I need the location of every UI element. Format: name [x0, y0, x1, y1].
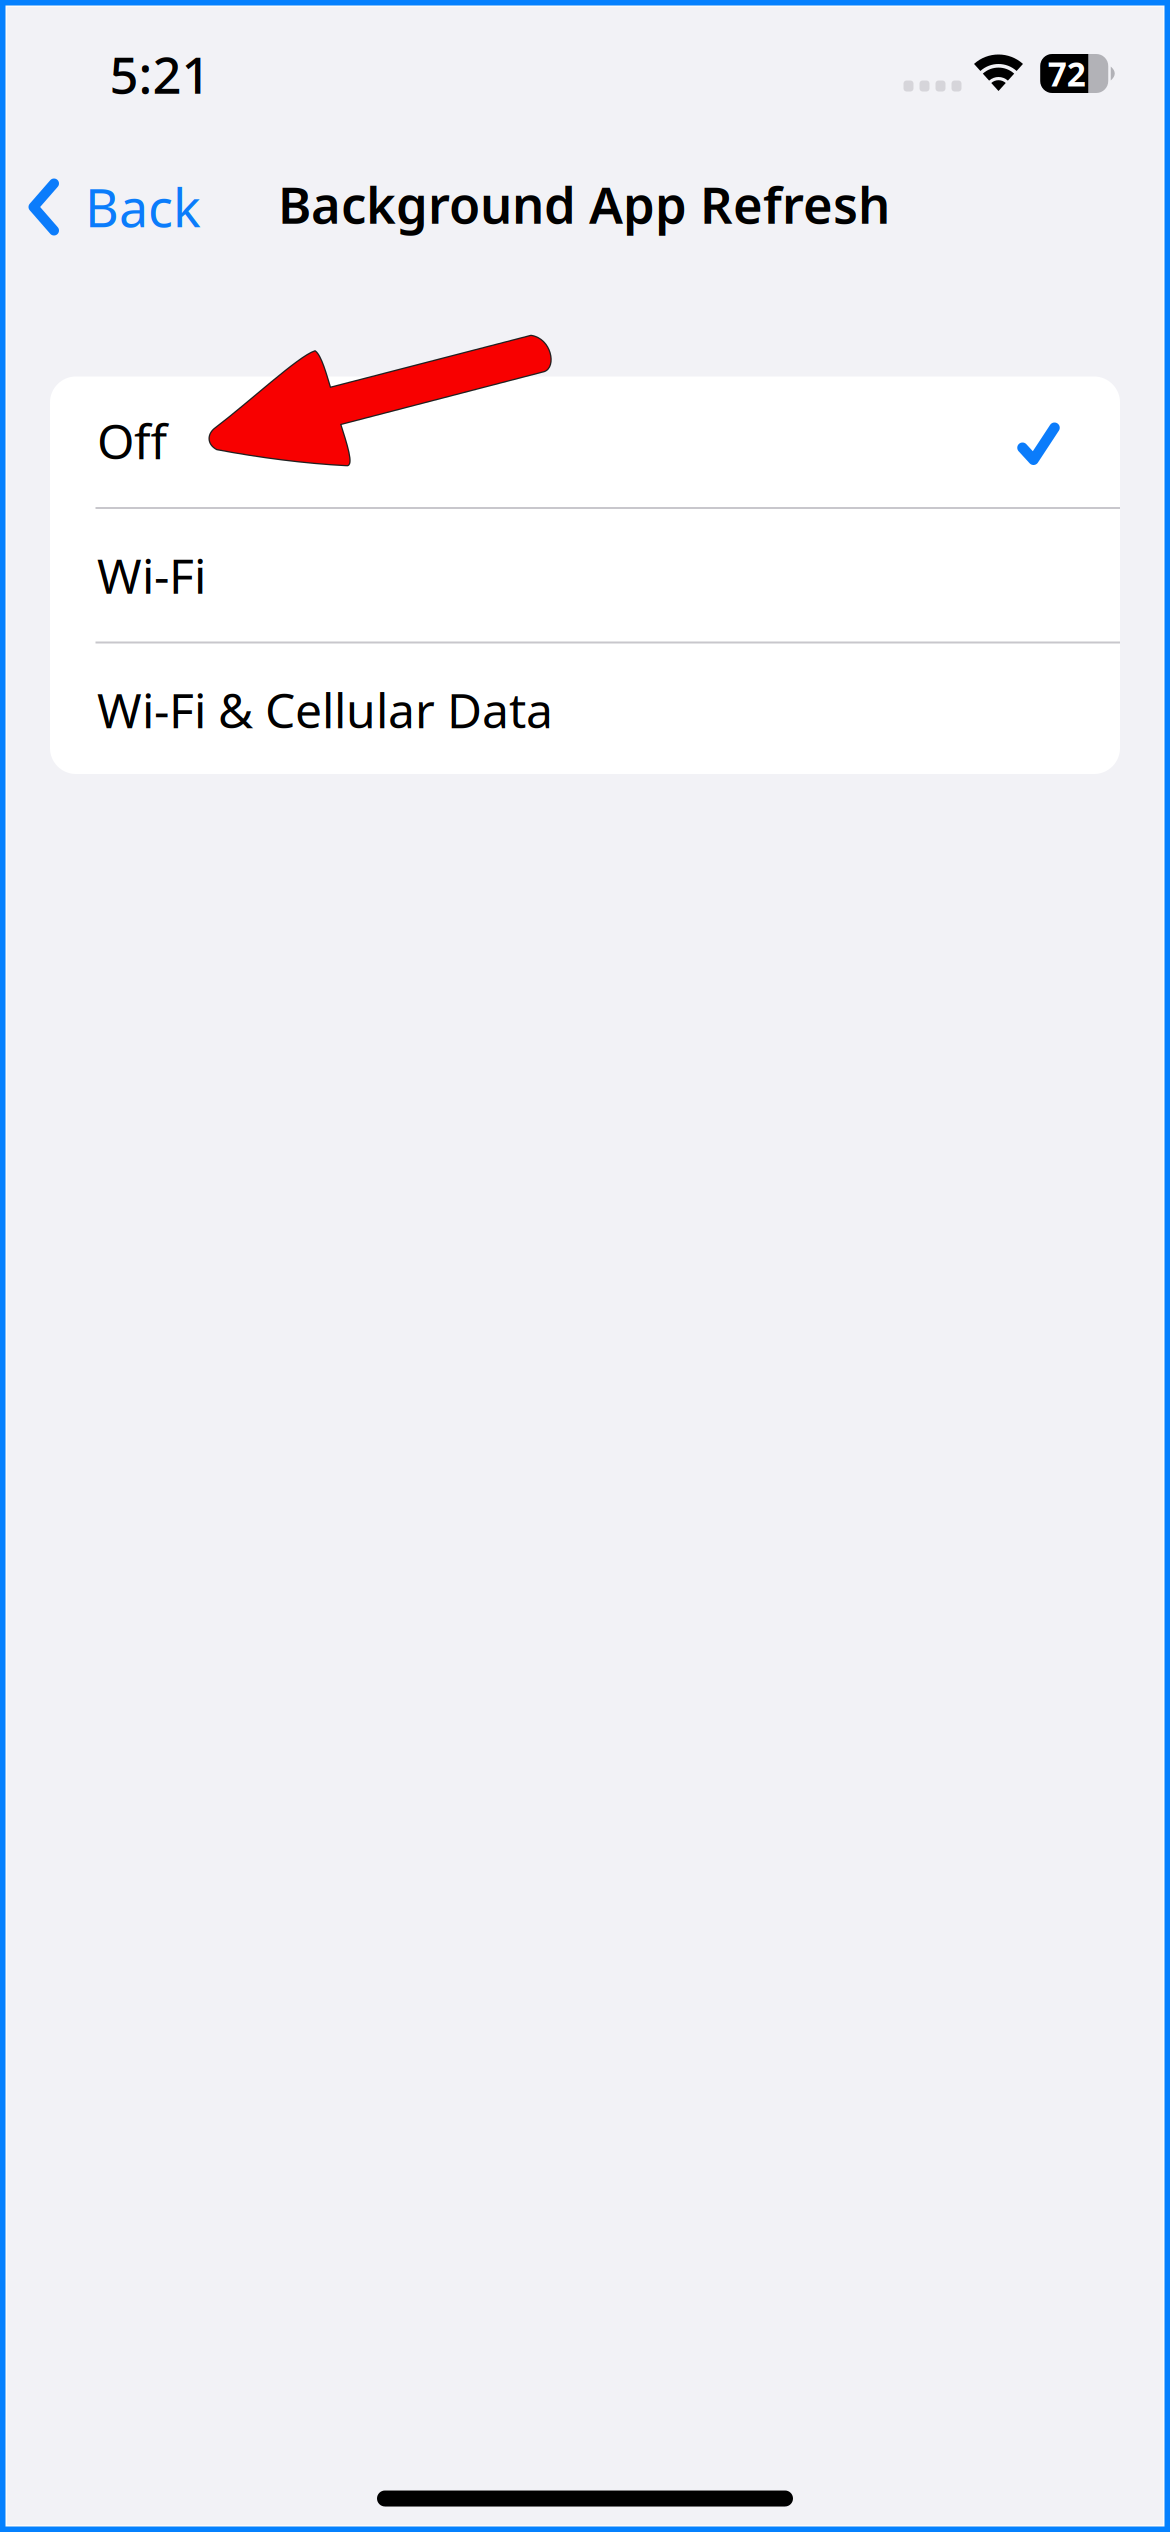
- button[interactable]: Wi-Fi: [50, 509, 1120, 641]
- staticText: 72: [1048, 51, 1086, 96]
- staticText: Background App Refresh: [278, 170, 890, 238]
- staticText: Back: [85, 172, 201, 242]
- staticText: Wi-Fi: [97, 543, 206, 607]
- button[interactable]: Back: [0, 152, 240, 262]
- staticText: 5:21: [109, 40, 210, 108]
- staticText: Wi-Fi & Cellular Data: [97, 678, 553, 742]
- button[interactable]: Off: [50, 374, 1120, 507]
- staticText: Off: [97, 409, 167, 473]
- button[interactable]: Wi-Fi & Cellular Data: [50, 643, 1120, 776]
